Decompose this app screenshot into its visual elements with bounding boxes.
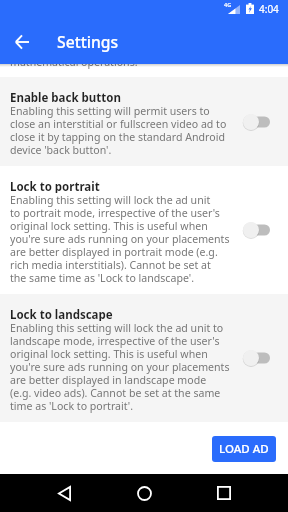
- button[interactable]: LOAD AD: [212, 436, 276, 462]
- staticText: Lock to landscape: [10, 307, 113, 321]
- button[interactable]: Toggle setting: [243, 112, 270, 132]
- staticText: LOAD AD: [219, 441, 269, 457]
- button[interactable]: Back: [42, 474, 86, 512]
- staticText: 4:04: [259, 2, 279, 16]
- staticText: Enable back button: [10, 90, 121, 104]
- staticText: Enabling this setting will lock the ad u…: [10, 321, 230, 413]
- button[interactable]: Recent apps: [202, 474, 246, 512]
- staticText: Enabling this setting will permit users …: [10, 104, 227, 157]
- button[interactable]: Enable back button: [0, 77, 288, 166]
- staticText: Settings: [57, 31, 119, 52]
- button[interactable]: Lock to landscape: [0, 294, 288, 422]
- staticText: Lock to portrait: [10, 179, 100, 193]
- staticText: 4G: [224, 1, 232, 8]
- staticText: mathematical operations.: [10, 55, 138, 69]
- button[interactable]: Back: [3, 19, 41, 65]
- button[interactable]: Toggle setting: [243, 348, 270, 368]
- button[interactable]: Home: [122, 474, 166, 512]
- staticText: Enabling this setting will lock the ad u…: [10, 193, 230, 285]
- button[interactable]: Toggle setting: [243, 220, 270, 240]
- button[interactable]: Lock to portrait: [0, 166, 288, 294]
